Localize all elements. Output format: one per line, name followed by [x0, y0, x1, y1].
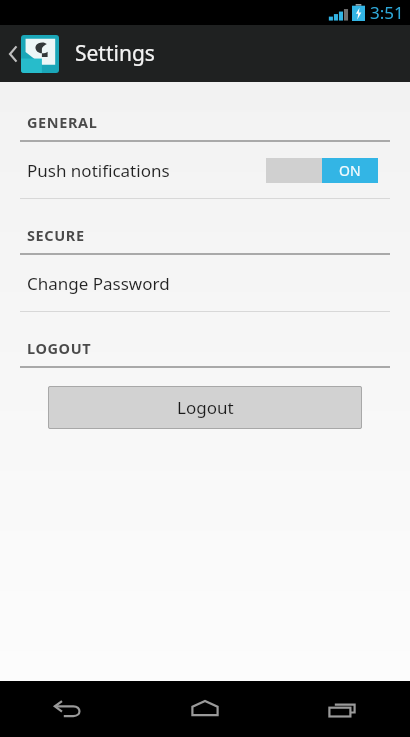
staticText: SECURE	[27, 225, 85, 245]
staticText: Push notifications	[27, 159, 170, 182]
staticText: LOGOUT	[27, 338, 92, 358]
staticText: Change Password	[27, 272, 170, 295]
button[interactable]: Push notifications	[0, 142, 410, 198]
button[interactable]: Home	[136, 681, 273, 737]
staticText: 3:51	[370, 1, 404, 24]
button[interactable]: Navigate up	[4, 35, 63, 73]
staticText: GENERAL	[27, 112, 98, 132]
button[interactable]: Recent apps	[273, 681, 410, 737]
staticText: Logout	[177, 396, 234, 419]
button[interactable]: Back	[0, 681, 136, 737]
button[interactable]: Logout	[48, 386, 362, 429]
staticText: ON	[339, 161, 361, 180]
staticText: Settings	[75, 39, 155, 68]
button[interactable]: Change Password	[0, 255, 410, 311]
button[interactable]: Push notifications toggle, on	[266, 158, 378, 183]
